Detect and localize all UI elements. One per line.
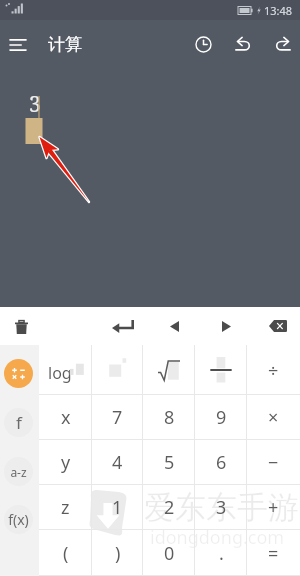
- button[interactable]: y: [39, 440, 92, 485]
- button[interactable]: Custom functions: [4, 505, 33, 534]
- staticText: 2: [164, 495, 175, 520]
- button[interactable]: Move left: [155, 307, 193, 345]
- staticText: a-z: [10, 464, 27, 480]
- button[interactable]: Functions: [4, 408, 33, 437]
- button[interactable]: 2: [143, 485, 195, 530]
- staticText: x: [61, 405, 71, 430]
- button[interactable]: Letters: [4, 457, 33, 486]
- button[interactable]: [143, 345, 195, 395]
- staticText: ): [115, 541, 121, 566]
- staticText: (: [63, 541, 69, 566]
- staticText: ×: [268, 405, 279, 430]
- staticText: .: [219, 541, 224, 566]
- button[interactable]: Backspace: [259, 307, 297, 345]
- staticText: 1: [112, 495, 123, 520]
- button[interactable]: 9: [195, 395, 247, 440]
- button[interactable]: x: [39, 395, 92, 440]
- button[interactable]: −: [247, 440, 300, 485]
- button[interactable]: Enter: [104, 307, 142, 345]
- staticText: idongdong.com: [150, 525, 285, 550]
- button[interactable]: log: [39, 345, 92, 395]
- button[interactable]: ): [92, 530, 143, 576]
- button[interactable]: [195, 345, 247, 395]
- staticText: +: [268, 495, 279, 520]
- staticText: z: [61, 495, 70, 520]
- staticText: 爱东东手游: [144, 488, 299, 527]
- button[interactable]: 5: [143, 440, 195, 485]
- button[interactable]: .: [195, 530, 247, 576]
- staticText: 6: [216, 450, 227, 475]
- staticText: log: [48, 362, 72, 384]
- staticText: f(x): [8, 510, 29, 529]
- button[interactable]: z: [39, 485, 92, 530]
- button[interactable]: 1: [92, 485, 143, 530]
- button[interactable]: [92, 345, 143, 395]
- button[interactable]: =: [247, 530, 300, 576]
- button[interactable]: Operators: [4, 359, 33, 388]
- staticText: 7: [112, 405, 123, 430]
- button[interactable]: Undo: [224, 21, 262, 68]
- staticText: 3: [29, 90, 41, 119]
- staticText: 0: [164, 541, 175, 566]
- button[interactable]: 8: [143, 395, 195, 440]
- staticText: 计算: [48, 34, 82, 55]
- button[interactable]: History: [184, 21, 222, 68]
- button[interactable]: Move right: [207, 307, 245, 345]
- staticText: 8: [164, 405, 175, 430]
- staticText: 3: [216, 495, 227, 520]
- button[interactable]: Redo: [263, 21, 300, 68]
- staticText: y: [61, 450, 71, 475]
- button[interactable]: Menu: [0, 21, 36, 68]
- button[interactable]: ×: [247, 395, 300, 440]
- button[interactable]: 4: [92, 440, 143, 485]
- staticText: 4: [112, 450, 123, 475]
- staticText: −: [268, 450, 279, 475]
- staticText: =: [268, 541, 279, 566]
- button[interactable]: 6: [195, 440, 247, 485]
- button[interactable]: Clear: [2, 307, 40, 345]
- button[interactable]: ÷: [247, 345, 300, 395]
- staticText: 9: [216, 405, 227, 430]
- staticText: 13:48: [264, 3, 293, 18]
- button[interactable]: 3: [195, 485, 247, 530]
- staticText: ÷: [268, 358, 279, 383]
- button[interactable]: 7: [92, 395, 143, 440]
- button[interactable]: 0: [143, 530, 195, 576]
- button[interactable]: (: [39, 530, 92, 576]
- button[interactable]: +: [247, 485, 300, 530]
- staticText: 5: [164, 450, 175, 475]
- staticText: f: [16, 411, 22, 434]
